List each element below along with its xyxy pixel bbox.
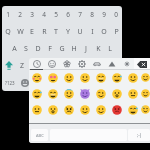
staticText: P — [114, 27, 119, 37]
staticText: E — [30, 27, 34, 37]
button[interactable]: Emoji — [93, 70, 109, 86]
button[interactable]: Category 2 — [44, 58, 59, 70]
staticText: H — [71, 44, 77, 54]
staticText: 6 — [66, 10, 70, 19]
button[interactable]: Emoji — [18, 74, 32, 91]
button[interactable]: Emoji — [61, 102, 77, 118]
button[interactable]: D — [32, 40, 44, 57]
button[interactable]: ?123 — [2, 74, 18, 91]
staticText: W — [17, 27, 24, 37]
staticText: 8 — [90, 10, 94, 19]
button[interactable]: Category 6 — [104, 58, 119, 70]
button[interactable]: Emoji — [45, 70, 61, 86]
button[interactable]: Q — [2, 23, 14, 40]
button[interactable]: Emoji — [125, 70, 141, 86]
button[interactable]: H — [68, 40, 80, 57]
button[interactable]: G — [56, 40, 68, 57]
button[interactable]: 9 — [98, 6, 110, 23]
staticText: 7 — [78, 10, 82, 19]
button[interactable]: Shift — [2, 57, 16, 74]
button[interactable]: Emoji — [29, 70, 45, 86]
button[interactable]: 8 — [86, 6, 98, 23]
staticText: A — [12, 44, 17, 54]
button[interactable]: U — [74, 23, 86, 40]
button[interactable]: I — [86, 23, 98, 40]
staticText: F — [48, 44, 52, 54]
button[interactable]: A — [8, 40, 20, 57]
button[interactable]: Backspace — [134, 58, 150, 70]
button[interactable]: 7 — [74, 6, 86, 23]
button[interactable]: 4 — [38, 6, 50, 23]
button[interactable]: Category 5 — [89, 58, 104, 70]
staticText: 9 — [102, 10, 106, 19]
button[interactable]: Emoji — [109, 70, 125, 86]
staticText: 1 — [6, 10, 10, 19]
button[interactable]: Emoji — [29, 102, 45, 118]
button[interactable]: Emoji — [125, 102, 141, 118]
button[interactable]: Category 4 — [74, 58, 89, 70]
staticText: Q — [5, 27, 11, 37]
button[interactable]: Emoji — [141, 70, 150, 86]
staticText: ABC — [36, 133, 44, 138]
staticText: 0 — [114, 10, 118, 19]
button[interactable]: ABC — [31, 129, 48, 141]
button[interactable]: Category 3 — [59, 58, 74, 70]
button[interactable]: Emoticons — [128, 129, 150, 141]
staticText: 2 — [18, 10, 22, 19]
button[interactable]: O — [98, 23, 110, 40]
staticText: Y — [66, 27, 70, 37]
button[interactable]: Emoji — [109, 86, 125, 102]
staticText: J — [85, 44, 87, 54]
staticText: ?123 — [5, 80, 15, 86]
button[interactable]: Emoji — [93, 102, 109, 118]
button[interactable]: Emoji — [45, 86, 61, 102]
button[interactable]: Emoji — [61, 70, 77, 86]
button[interactable]: Emoji — [109, 102, 125, 118]
button[interactable]: S — [20, 40, 32, 57]
button[interactable]: 6 — [62, 6, 74, 23]
button[interactable]: 0 — [110, 6, 122, 23]
staticText: S — [24, 44, 28, 54]
staticText: 4 — [42, 10, 46, 19]
button[interactable]: F — [44, 40, 56, 57]
button[interactable]: Emoji — [125, 86, 141, 102]
button[interactable]: W — [14, 23, 26, 40]
button[interactable]: Category 1 — [29, 58, 44, 70]
staticText: K — [96, 44, 101, 54]
staticText: R — [42, 27, 47, 37]
button[interactable]: L — [104, 40, 116, 57]
staticText: ;-) — [137, 132, 142, 138]
staticText: 3 — [30, 10, 34, 19]
button[interactable]: Emoji — [77, 86, 93, 102]
staticText: O — [101, 27, 107, 37]
button[interactable]: T — [50, 23, 62, 40]
button[interactable]: P — [110, 23, 122, 40]
staticText: T — [54, 27, 58, 37]
button[interactable]: Emoji — [141, 86, 150, 102]
button[interactable]: 5 — [50, 6, 62, 23]
button[interactable]: 1 — [2, 6, 14, 23]
staticText: D — [35, 44, 41, 54]
button[interactable]: Emoji — [77, 70, 93, 86]
staticText: L — [108, 44, 112, 54]
button[interactable]: Emoji — [77, 102, 93, 118]
button[interactable]: Emoji — [141, 102, 150, 118]
button[interactable]: Emoji — [29, 86, 45, 102]
button[interactable]: Category 7 — [119, 58, 134, 70]
button[interactable]: Emoji — [45, 102, 61, 118]
button[interactable]: R — [38, 23, 50, 40]
staticText: I — [91, 27, 94, 37]
button[interactable]: Emoji — [61, 86, 77, 102]
button[interactable]: K — [92, 40, 104, 57]
button[interactable]: 3 — [26, 6, 38, 23]
button[interactable]: J — [80, 40, 92, 57]
button[interactable]: E — [26, 23, 38, 40]
button[interactable]: 2 — [14, 6, 26, 23]
staticText: G — [59, 44, 65, 54]
staticText: Z — [20, 61, 25, 71]
button[interactable]: Emoji — [93, 86, 109, 102]
staticText: 5 — [54, 10, 58, 19]
staticText: U — [77, 27, 83, 37]
button[interactable]: Y — [62, 23, 74, 40]
